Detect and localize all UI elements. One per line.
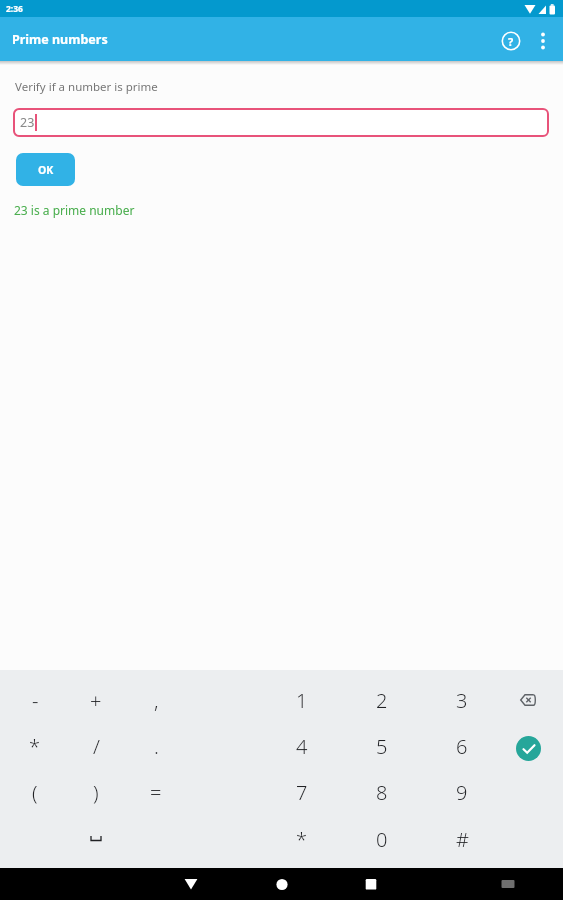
- button[interactable]: 7: [278, 769, 326, 815]
- staticText: 9: [456, 779, 468, 806]
- button[interactable]: [488, 868, 528, 900]
- staticText: 1: [296, 687, 308, 714]
- staticText: 2:36: [6, 3, 23, 15]
- staticText: /: [93, 733, 100, 760]
- staticText: =: [150, 779, 162, 806]
- button[interactable]: 3: [438, 677, 486, 723]
- button[interactable]: .: [132, 723, 180, 769]
- staticText: -: [32, 687, 39, 714]
- staticText: .: [154, 733, 159, 760]
- staticText: 23: [20, 114, 35, 131]
- button[interactable]: 5: [358, 723, 406, 769]
- staticText: Verify if a number is prime: [15, 79, 158, 95]
- staticText: *: [29, 733, 41, 760]
- button[interactable]: ?: [499, 29, 523, 53]
- staticText: *: [296, 826, 308, 853]
- staticText: 4: [296, 733, 308, 760]
- staticText: #: [456, 826, 469, 853]
- staticText: Prime numbers: [12, 31, 108, 48]
- button[interactable]: [351, 868, 391, 900]
- button[interactable]: [504, 677, 552, 723]
- staticText: 23 is a prime number: [14, 202, 135, 218]
- staticText: (: [32, 779, 38, 806]
- button[interactable]: /: [72, 723, 120, 769]
- button[interactable]: OK: [16, 153, 75, 186]
- button[interactable]: ): [72, 769, 120, 815]
- staticText: +: [90, 687, 102, 714]
- button[interactable]: =: [132, 769, 180, 815]
- staticText: ): [93, 779, 99, 806]
- button[interactable]: [262, 868, 302, 900]
- staticText: 5: [376, 733, 388, 760]
- button[interactable]: 2: [358, 677, 406, 723]
- staticText: 6: [456, 733, 468, 760]
- button[interactable]: #: [438, 816, 486, 862]
- staticText: 2: [376, 687, 388, 714]
- button[interactable]: 1: [278, 677, 326, 723]
- staticText: 3: [456, 687, 468, 714]
- button[interactable]: [171, 868, 211, 900]
- button[interactable]: *: [11, 723, 59, 769]
- button[interactable]: 0: [358, 816, 406, 862]
- button[interactable]: [533, 27, 553, 55]
- button[interactable]: ,: [132, 677, 180, 723]
- button[interactable]: [72, 816, 120, 862]
- staticText: 0: [376, 826, 388, 853]
- staticText: ?: [508, 34, 514, 49]
- button[interactable]: 23: [13, 108, 549, 137]
- staticText: 7: [296, 779, 308, 806]
- button[interactable]: 9: [438, 769, 486, 815]
- staticText: ,: [154, 687, 159, 714]
- button[interactable]: 8: [358, 769, 406, 815]
- button[interactable]: (: [11, 769, 59, 815]
- button[interactable]: -: [11, 677, 59, 723]
- staticText: OK: [38, 163, 54, 177]
- button[interactable]: 6: [438, 723, 486, 769]
- button[interactable]: +: [72, 677, 120, 723]
- staticText: 8: [376, 779, 388, 806]
- button[interactable]: *: [278, 816, 326, 862]
- button[interactable]: [516, 736, 541, 761]
- button[interactable]: 4: [278, 723, 326, 769]
